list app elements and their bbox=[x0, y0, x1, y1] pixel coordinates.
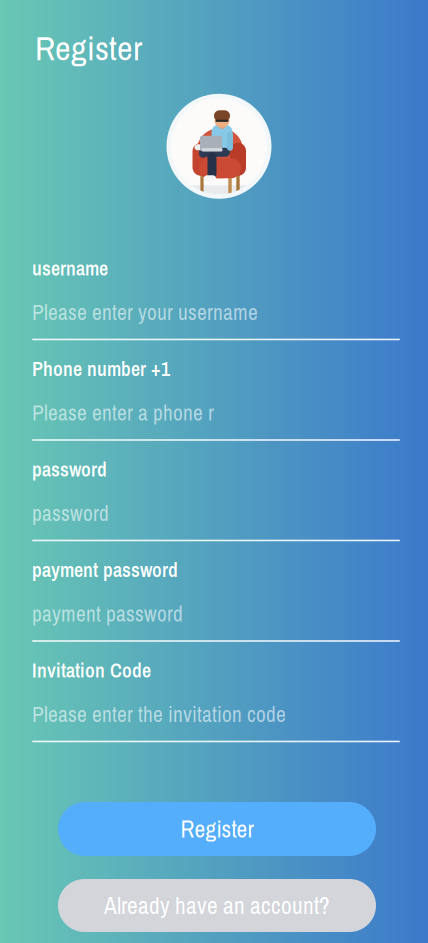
staticText: password bbox=[32, 499, 109, 528]
staticText: Register bbox=[180, 813, 253, 845]
button[interactable]: Already have an account? bbox=[58, 879, 376, 932]
staticText: password bbox=[32, 456, 107, 483]
button[interactable]: Register bbox=[58, 802, 376, 856]
staticText: Please enter the invitation code bbox=[32, 700, 286, 729]
staticText: Invitation Code bbox=[32, 657, 151, 684]
staticText: payment password bbox=[32, 556, 178, 583]
staticText: Please enter a phone r bbox=[32, 398, 214, 427]
staticText: username bbox=[32, 255, 108, 282]
staticText: Please enter your username bbox=[32, 298, 258, 327]
staticText: payment password bbox=[32, 599, 183, 628]
staticText: Register bbox=[35, 25, 142, 71]
staticText: Phone number +1 bbox=[32, 355, 170, 382]
staticText: Already have an account? bbox=[104, 890, 330, 921]
